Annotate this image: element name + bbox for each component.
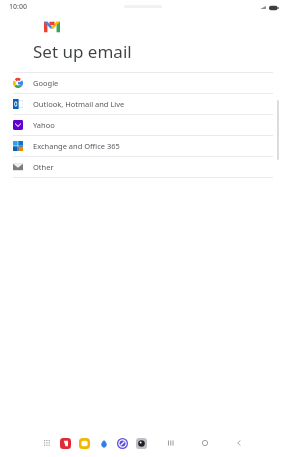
button[interactable]: Recents — [164, 436, 178, 450]
staticText: 10:00 — [9, 2, 27, 12]
staticText: Yahoo — [33, 120, 55, 130]
staticText: Outlook, Hotmail and Live — [33, 99, 125, 109]
button[interactable]: Back — [232, 436, 246, 450]
staticText: Set up email — [33, 40, 132, 63]
button[interactable]: Browser — [116, 437, 129, 450]
button[interactable]: Drive — [97, 437, 110, 450]
button[interactable]: All apps — [41, 437, 53, 449]
button[interactable]: Other — [0, 157, 286, 177]
button[interactable]: Camera — [135, 437, 148, 450]
button[interactable]: Google — [0, 73, 286, 93]
button[interactable]: Opera — [59, 437, 72, 450]
staticText: Other — [33, 162, 54, 172]
button[interactable]: Home — [198, 436, 212, 450]
staticText: Google — [33, 78, 59, 88]
button[interactable]: Yahoo — [0, 115, 286, 135]
button[interactable]: Gallery — [78, 437, 91, 450]
staticText: Exchange and Office 365 — [33, 141, 120, 151]
button[interactable]: Outlook, Hotmail and Live — [0, 94, 286, 114]
button[interactable]: Exchange and Office 365 — [0, 136, 286, 156]
